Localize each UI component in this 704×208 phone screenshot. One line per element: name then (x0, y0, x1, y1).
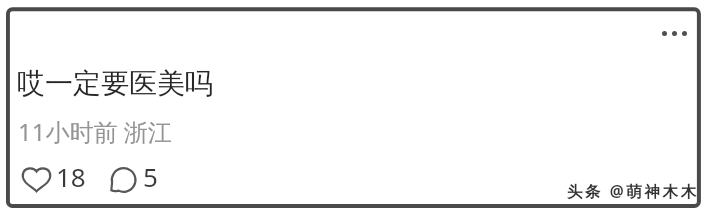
staticText: 哎一定要医美吗 (17, 66, 213, 101)
staticText: 18 (56, 159, 86, 194)
staticText: 11小时前 浙江 (18, 115, 172, 148)
button[interactable] (6, 8, 702, 208)
button[interactable]: More options (652, 19, 696, 47)
button[interactable]: Like (22, 162, 86, 197)
staticText: 头条 @萌神木木 (567, 180, 699, 201)
staticText: 5 (143, 159, 158, 194)
other: Like (22, 167, 51, 192)
other: Comment (110, 167, 136, 193)
button[interactable]: Comment (110, 162, 158, 197)
